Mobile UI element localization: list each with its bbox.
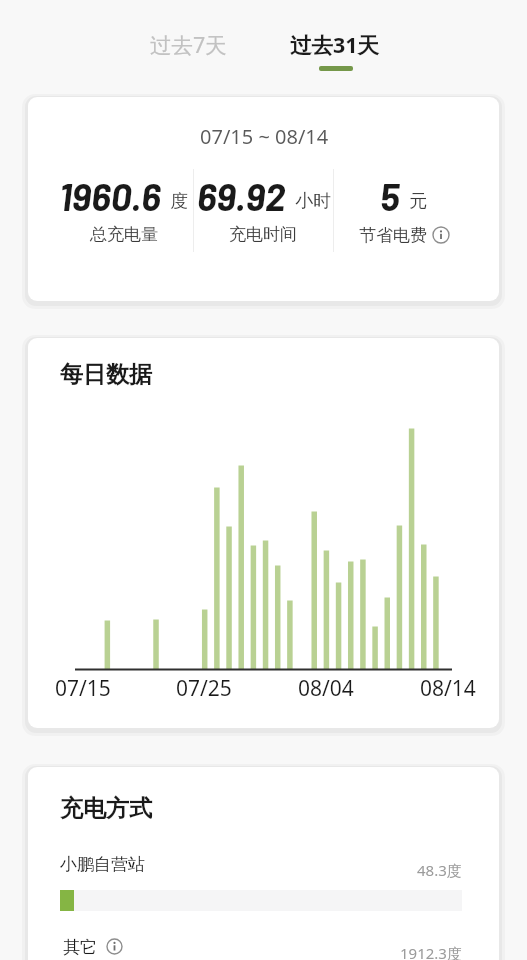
staticText: 69.92 [197, 173, 286, 217]
staticText: 过去31天 [290, 30, 380, 59]
button[interactable]: 过去31天 [282, 21, 388, 67]
staticText: 充电时间 [229, 224, 297, 245]
staticText: 07/15 [55, 674, 111, 698]
staticText: 每日数据 [60, 360, 152, 389]
button[interactable]: 节省电费 [359, 223, 450, 246]
staticText: 07/25 [176, 674, 232, 698]
staticText: 08/14 [420, 674, 476, 698]
staticText: 1960.6 [59, 173, 161, 217]
staticText: 07/15 ~ 08/14 [200, 123, 329, 150]
staticText: 08/04 [298, 674, 354, 698]
staticText: 总充电量 [90, 224, 158, 245]
staticText: 小时 [286, 188, 332, 213]
staticText: 过去7天 [150, 30, 227, 59]
staticText: 1912.3度 [400, 943, 462, 960]
staticText: 48.3度 [417, 860, 462, 880]
button[interactable]: 其它 [63, 934, 462, 958]
staticText: 其它 [63, 935, 106, 958]
button[interactable]: 过去7天 [138, 21, 238, 67]
staticText: 元 [400, 188, 428, 213]
button[interactable]: 小鹏自营站 [60, 852, 462, 876]
staticText: 度 [161, 188, 189, 213]
staticText: 小鹏自营站 [60, 854, 145, 875]
staticText: 5 [380, 173, 400, 217]
staticText: 节省电费 [359, 223, 432, 246]
staticText: 充电方式 [60, 794, 152, 823]
